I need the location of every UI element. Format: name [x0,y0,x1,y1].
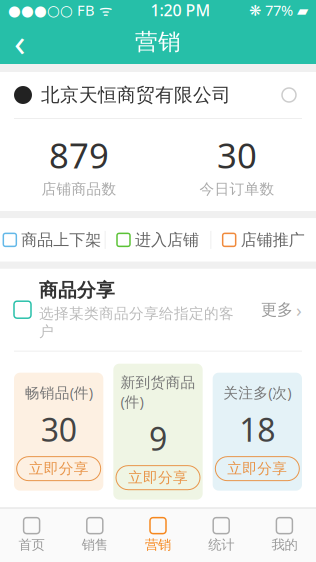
button[interactable]: 畅销品(件) [14,373,103,491]
staticText: 选择某类商品分享给指定的客户 [39,305,234,341]
button[interactable]: 我的 [253,513,316,558]
staticText: 店铺推广 [241,230,305,250]
staticText: 店铺商品数 [41,180,116,198]
staticText: ❋ 77% ▰ [249,0,308,20]
staticText: 商品分享 [39,279,115,302]
staticText: 畅销品(件) [25,383,93,402]
staticText: 立即分享 [29,460,89,478]
button[interactable]: 统计 [190,513,253,558]
staticText: 首页 [19,537,45,553]
button[interactable]: Settings [276,82,302,108]
staticText: 新到货商品(件) [120,374,195,411]
button[interactable]: Back [0,20,40,64]
staticText: 营销 [135,28,181,56]
staticText: 营销 [145,537,171,553]
button[interactable]: 店铺推广 [211,218,316,262]
staticText: 我的 [271,537,297,553]
button[interactable]: 进入店铺 [106,218,210,262]
staticText: 优惠券分享 [39,529,134,552]
staticText: ‹ [14,17,26,67]
staticText: 30 [41,408,77,451]
staticText: ●●●○○ FB ᯤ [8,0,112,20]
staticText: 更多 [261,300,293,320]
staticText: 北京天恒商贸有限公司 [41,83,231,106]
staticText: 18 [239,408,275,451]
staticText: 进入店铺 [135,230,199,250]
button[interactable]: 商品上下架 [0,218,105,262]
button[interactable]: 首页 [0,513,63,558]
staticText: 879 [49,132,109,178]
staticText: 今日订单数 [199,180,274,198]
staticText: 1:20 PM [150,0,210,21]
staticText: › [296,297,302,322]
staticText: 立即分享 [227,460,287,478]
staticText: 9 [149,417,167,460]
staticText: 销售 [82,537,108,553]
staticText: 立即分享 [128,469,188,487]
button[interactable]: 营销 [126,513,190,558]
button[interactable]: 销售 [63,513,126,558]
button[interactable]: 更多 [261,297,302,322]
staticText: 关注多(次) [223,383,291,402]
button[interactable]: 关注多(次) [213,373,302,491]
staticText: 统计 [208,537,234,553]
staticText: 商品上下架 [21,230,101,250]
button[interactable]: 新到货商品(件) [113,364,203,500]
staticText: 30 [217,132,257,178]
